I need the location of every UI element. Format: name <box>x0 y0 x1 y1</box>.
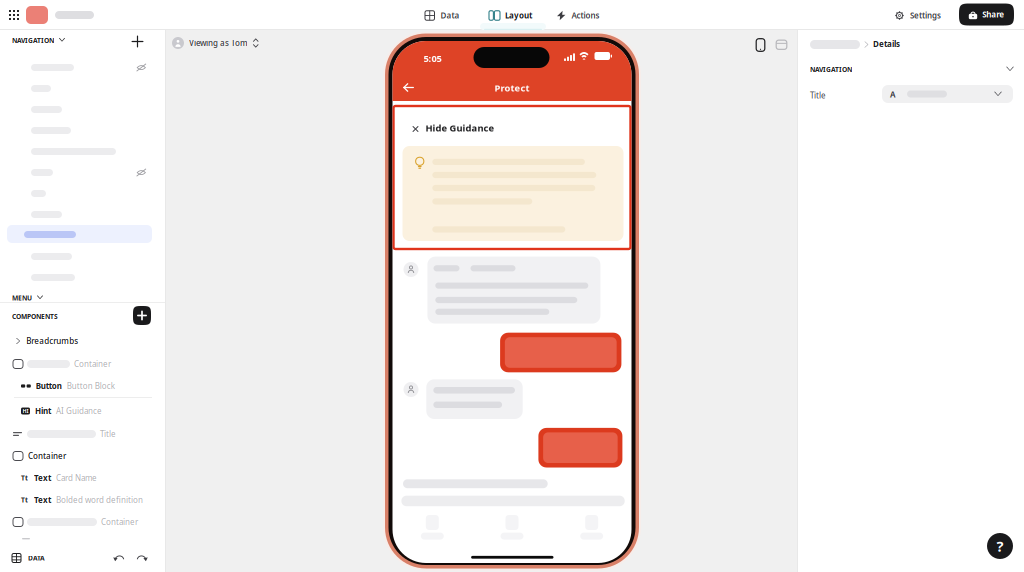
staticText: MENU <box>12 294 32 302</box>
staticText: Title <box>810 90 826 101</box>
button[interactable]: Breadcrumbs <box>0 330 166 352</box>
staticText: Bolded word definition <box>56 495 143 505</box>
button[interactable]: Container <box>0 353 166 375</box>
button[interactable]: Tt <box>0 489 166 511</box>
staticText: DATA <box>28 554 45 562</box>
staticText: ? <box>996 536 1003 556</box>
staticText: Container <box>28 451 66 461</box>
staticText: Share <box>982 9 1004 20</box>
button[interactable]: Redo <box>135 553 148 562</box>
button[interactable]: Tab <box>552 511 631 545</box>
staticText: NAVIGATION <box>12 36 54 45</box>
staticText: Tt <box>21 474 28 482</box>
staticText: Button Block <box>67 381 115 391</box>
button[interactable]: Container <box>0 445 166 467</box>
button[interactable]: Page <box>0 141 166 162</box>
button[interactable]: Page <box>0 267 166 288</box>
staticText: COMPONENTS <box>12 312 58 321</box>
button[interactable]: Desktop preview <box>776 40 787 49</box>
staticText: Details <box>873 39 900 49</box>
button[interactable]: Phone preview <box>756 38 765 51</box>
staticText: AI Guidance <box>56 406 102 416</box>
staticText: Container <box>101 517 138 527</box>
button[interactable]: Undo <box>113 553 126 562</box>
button[interactable]: Page <box>0 78 166 99</box>
staticText: Hide Guidance <box>425 122 494 134</box>
staticText: Tt <box>21 496 28 504</box>
staticText: NAVIGATION <box>810 65 852 74</box>
button[interactable]: Back <box>402 83 414 92</box>
staticText: HI <box>22 407 28 415</box>
button[interactable]: Button <box>0 375 166 397</box>
staticText: Title <box>100 429 116 439</box>
staticText: Viewing as Tom <box>189 38 248 48</box>
button[interactable]: Actions <box>557 10 607 21</box>
button[interactable]: Selected page <box>0 225 166 246</box>
button[interactable]: Data <box>425 10 471 21</box>
button[interactable]: Share <box>959 3 1014 25</box>
staticText: Container <box>74 359 111 369</box>
button[interactable]: All apps <box>5 7 23 23</box>
button[interactable]: Add component <box>133 306 151 325</box>
staticText: Breadcrumbs <box>26 336 78 346</box>
button[interactable]: Tab <box>392 511 472 545</box>
button[interactable]: Layout <box>489 10 547 21</box>
button[interactable]: Tt <box>0 467 166 489</box>
button[interactable]: Hidden page <box>0 162 166 183</box>
button[interactable]: MENU <box>12 294 152 302</box>
button[interactable]: Page <box>0 246 166 267</box>
staticText: Card Name <box>56 473 97 483</box>
button[interactable]: Hidden page <box>0 57 166 78</box>
staticText: Data <box>440 10 459 21</box>
button[interactable]: Hide guidance <box>411 125 419 133</box>
button[interactable]: Page <box>0 183 166 204</box>
staticText: Protect <box>494 82 529 94</box>
staticText: 5:05 <box>423 52 441 65</box>
staticText: Settings <box>910 10 941 21</box>
button[interactable]: HI <box>0 400 166 422</box>
button[interactable]: Viewing as Tom <box>172 37 302 49</box>
staticText: Text <box>34 473 51 483</box>
staticText: Actions <box>572 10 600 21</box>
staticText: Hint <box>35 406 51 416</box>
button[interactable]: Page <box>0 99 166 120</box>
button[interactable]: Settings <box>895 10 949 21</box>
button[interactable]: Page <box>0 120 166 141</box>
button[interactable]: NAVIGATION <box>12 36 132 45</box>
staticText: Layout <box>505 10 532 21</box>
staticText: A <box>890 89 896 100</box>
button[interactable]: Add page <box>131 35 144 48</box>
staticText: Text <box>34 495 51 505</box>
button[interactable]: Help <box>987 533 1013 559</box>
button[interactable]: Collapse navigation section <box>1006 66 1014 73</box>
button[interactable]: DATA <box>12 553 152 562</box>
button[interactable]: Page <box>0 204 166 225</box>
button[interactable]: Tab <box>472 511 552 545</box>
button[interactable]: A <box>882 85 1013 103</box>
staticText: Button <box>36 381 62 391</box>
button[interactable]: Title <box>0 423 166 445</box>
button[interactable]: Container <box>0 511 166 533</box>
